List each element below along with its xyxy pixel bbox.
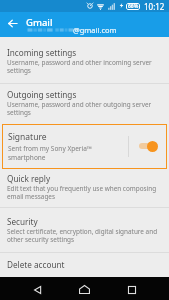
button[interactable]: Incoming settings [0,37,169,83]
button[interactable]: Navigate up [1,12,23,34]
staticText: @gmail.com [73,25,117,35]
staticText: Delete account [7,259,65,270]
staticText: Sent from my Sony Xperia™ smartphone [8,144,124,162]
staticText: 66% [128,3,139,10]
button[interactable]: Outgoing settings [0,84,169,124]
staticText: Username, password and other outgoing se… [7,100,152,117]
staticText: Username, password and other incoming se… [7,58,152,75]
button[interactable]: Quick reply [0,169,169,207]
staticText: Incoming settings [7,47,77,58]
staticText: Quick reply [7,173,51,184]
button[interactable]: Home [73,278,96,300]
staticText: Edit text that you frequently use when c… [7,184,157,201]
button[interactable]: Recent apps [120,278,143,300]
button[interactable]: Back [26,278,49,300]
staticText: Select certificate, encryption, digital … [7,227,158,244]
staticText: Outgoing settings [7,89,77,100]
button[interactable]: Security [0,208,169,252]
staticText: Signature [8,131,47,143]
button[interactable]: Toggle signature [129,124,167,169]
button[interactable]: Delete account [0,253,169,277]
button[interactable]: Signature [2,124,167,169]
staticText: 10:12 [144,1,165,12]
staticText: Gmail [26,16,53,29]
staticText: Security [7,216,38,227]
